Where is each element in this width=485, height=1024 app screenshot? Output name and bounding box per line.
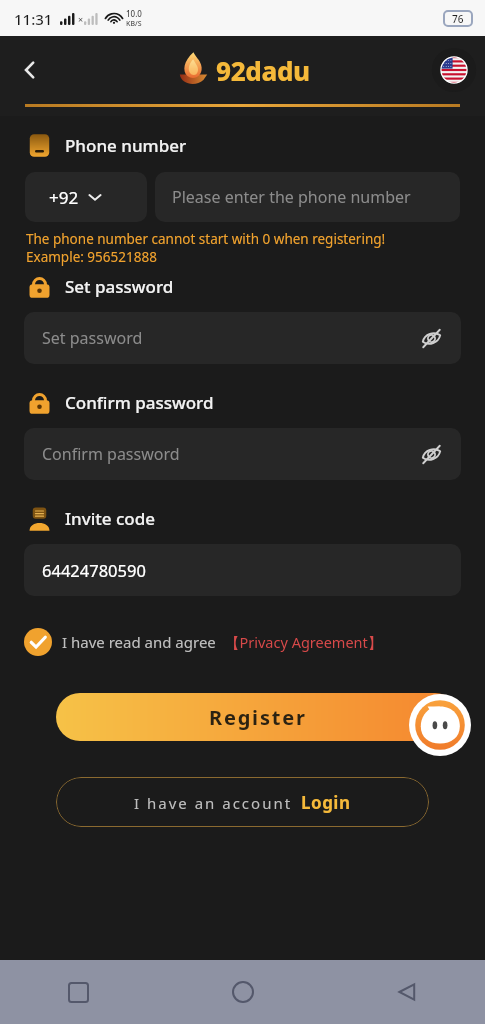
staticText: +92 bbox=[49, 186, 79, 209]
staticText: 【Privacy Agreement】 bbox=[225, 632, 383, 652]
staticText: I have read and agree bbox=[62, 632, 216, 652]
button[interactable]: I have an account bbox=[56, 777, 429, 827]
staticText: 11:31 bbox=[14, 9, 53, 29]
staticText: Set password bbox=[65, 275, 174, 298]
staticText: The phone number cannot start with 0 whe… bbox=[26, 230, 386, 248]
staticText: KB/S bbox=[126, 19, 142, 29]
staticText: Set password bbox=[42, 327, 143, 349]
staticText: 76 bbox=[452, 12, 464, 26]
button[interactable]: Show password bbox=[415, 322, 447, 354]
staticText: 10.0 bbox=[126, 8, 142, 19]
button[interactable]: Set password bbox=[24, 312, 461, 364]
staticText: 64424780590 bbox=[42, 559, 146, 581]
button[interactable]: Register bbox=[56, 693, 459, 741]
button[interactable]: I have read and agree bbox=[24, 624, 383, 660]
staticText: Login bbox=[301, 791, 351, 814]
staticText: Please enter the phone number bbox=[172, 186, 411, 208]
staticText: Invite code bbox=[65, 507, 155, 530]
staticText: Phone number bbox=[65, 134, 187, 157]
staticText: Example: 956521888 bbox=[26, 248, 157, 266]
button[interactable]: Show password bbox=[415, 438, 447, 470]
button[interactable]: Language bbox=[437, 53, 471, 87]
staticText: Confirm password bbox=[42, 443, 180, 465]
button[interactable]: Please enter the phone number bbox=[155, 172, 460, 222]
staticText: Register bbox=[209, 704, 307, 731]
button[interactable]: Back bbox=[8, 48, 52, 92]
staticText: I have an account bbox=[134, 793, 293, 813]
button[interactable]: Confirm password bbox=[24, 428, 461, 480]
staticText: × bbox=[78, 13, 84, 25]
staticText: 92dadu bbox=[216, 53, 310, 88]
button[interactable]: Home bbox=[221, 970, 265, 1014]
button[interactable]: +92 bbox=[25, 172, 147, 222]
staticText: Confirm password bbox=[65, 391, 214, 414]
button[interactable]: 64424780590 bbox=[24, 544, 461, 596]
button[interactable]: Recents bbox=[56, 970, 100, 1014]
button[interactable]: Back bbox=[385, 970, 429, 1014]
button[interactable]: Customer service bbox=[409, 694, 471, 756]
